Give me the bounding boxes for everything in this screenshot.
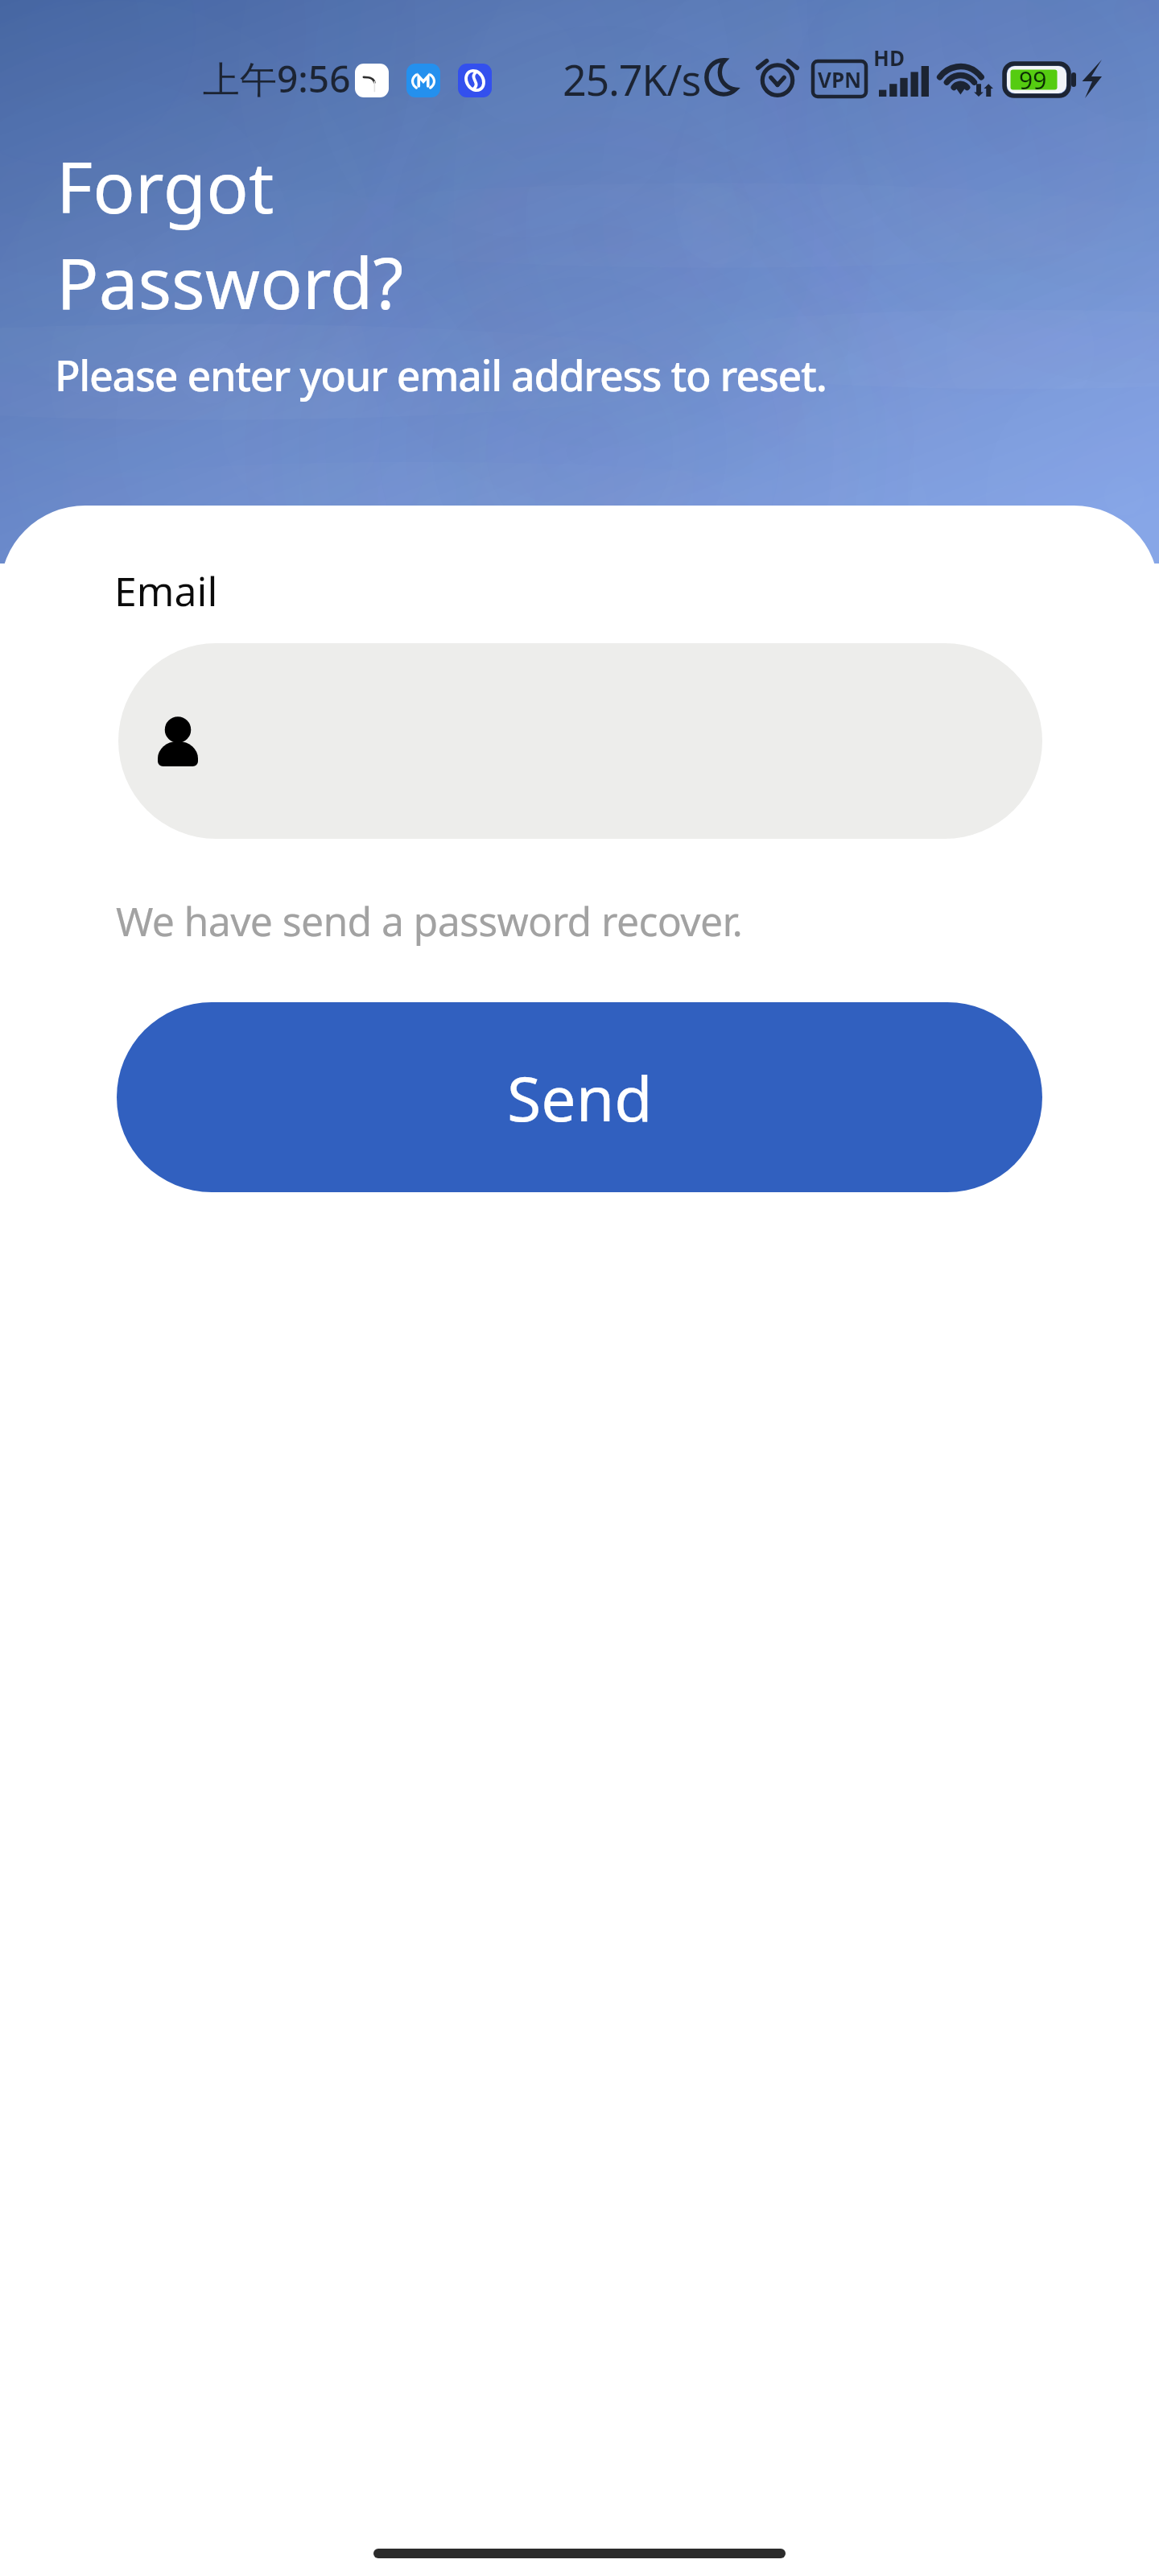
other: Notification	[355, 64, 389, 97]
staticText: VPN	[818, 65, 862, 93]
other: Wi-Fi	[937, 60, 993, 97]
staticText: Forgot	[56, 138, 274, 233]
other: Email address	[158, 716, 198, 766]
staticText: Please enter your email address to reset…	[55, 346, 827, 403]
staticText: Password?	[56, 234, 404, 329]
other: App	[406, 64, 440, 97]
other: App	[458, 64, 492, 97]
staticText: 上午9:56	[203, 53, 351, 104]
button[interactable]: Email address	[118, 643, 1042, 839]
staticText: Send	[507, 1055, 653, 1140]
other: Alarm	[757, 53, 798, 98]
staticText: HD	[873, 43, 905, 72]
staticText: Email	[114, 563, 218, 618]
other: Mobile signal	[879, 66, 929, 97]
staticText: 25.7K/s	[563, 51, 701, 108]
other: Charging	[1082, 60, 1102, 98]
button[interactable]: Send	[117, 1002, 1042, 1192]
other: Do not disturb	[704, 58, 743, 95]
staticText: 99	[1019, 64, 1047, 96]
staticText: We have send a password recover.	[116, 894, 743, 948]
